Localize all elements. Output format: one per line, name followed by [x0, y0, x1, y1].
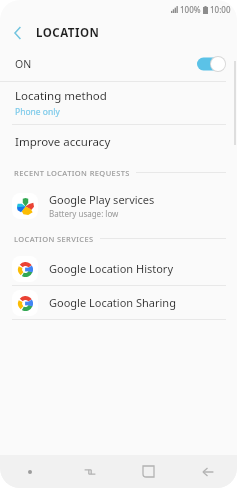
staticText: 10:00: [210, 4, 231, 15]
staticText: Improve accuracy: [15, 134, 111, 150]
button[interactable]: Show keyboard: [0, 455, 60, 488]
staticText: LOCATION: [36, 25, 100, 41]
button[interactable]: Home: [119, 455, 178, 488]
staticText: LOCATION SERVICES: [14, 234, 94, 244]
staticText: RECENT LOCATION REQUESTS: [14, 168, 130, 178]
button[interactable]: Google Play services: [0, 186, 237, 225]
staticText: ON: [15, 57, 32, 71]
button[interactable]: ON: [0, 47, 237, 81]
staticText: Locating method: [15, 88, 107, 104]
button[interactable]: Switch keyboard: [60, 455, 119, 488]
staticText: Phone only: [15, 106, 60, 118]
staticText: Google Location History: [49, 261, 174, 276]
button[interactable]: Google Location Sharing: [0, 286, 237, 319]
button[interactable]: Navigate up: [7, 22, 29, 44]
button[interactable]: Improve accuracy: [0, 125, 237, 159]
staticText: Google Play services: [49, 192, 155, 207]
button[interactable]: Locating method: [0, 82, 237, 124]
staticText: 100%: [180, 4, 201, 15]
button[interactable]: Google Location History: [0, 252, 237, 285]
button[interactable]: Back: [178, 455, 237, 488]
staticText: Google Location Sharing: [49, 295, 176, 310]
staticText: Battery usage: low: [49, 208, 119, 219]
